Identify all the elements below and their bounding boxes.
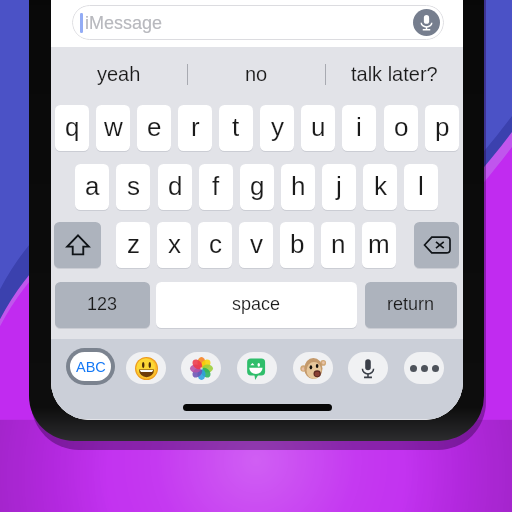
button[interactable]: x <box>157 222 191 268</box>
button[interactable]: c <box>198 222 232 268</box>
staticText: talk later? <box>351 63 438 85</box>
button[interactable]: talk later? <box>326 57 463 91</box>
button[interactable]: yeah <box>51 57 187 91</box>
staticText: c <box>209 229 222 258</box>
staticText: q <box>65 112 80 141</box>
button[interactable]: q <box>55 105 89 151</box>
staticText: ABC <box>76 359 106 375</box>
staticText: e <box>147 112 162 141</box>
staticText: a <box>85 171 100 200</box>
button[interactable]: i <box>342 105 376 151</box>
button[interactable]: o <box>384 105 418 151</box>
staticText: i <box>356 112 362 141</box>
button[interactable]: Backspace <box>414 222 459 268</box>
button[interactable]: t <box>219 105 253 151</box>
button[interactable]: space <box>156 282 357 328</box>
button[interactable]: iMessage <box>72 5 444 40</box>
staticText: x <box>168 229 181 258</box>
button[interactable]: Memoji <box>293 352 333 384</box>
button[interactable]: f <box>199 164 233 210</box>
button[interactable]: p <box>425 105 459 151</box>
button[interactable]: return <box>365 282 457 328</box>
button[interactable]: s <box>116 164 150 210</box>
staticText: y <box>271 112 284 141</box>
staticText: r <box>191 112 200 141</box>
button[interactable]: d <box>158 164 192 210</box>
button[interactable]: ABC <box>70 352 111 381</box>
staticText: o <box>394 112 409 141</box>
button[interactable]: a <box>75 164 109 210</box>
staticText: space <box>232 294 281 314</box>
button[interactable]: b <box>280 222 314 268</box>
staticText: w <box>104 112 123 141</box>
button[interactable]: v <box>239 222 273 268</box>
staticText: s <box>127 171 140 200</box>
staticText: l <box>418 171 424 200</box>
staticText: v <box>250 229 263 258</box>
staticText: j <box>336 171 342 200</box>
staticText: u <box>311 112 326 141</box>
staticText: z <box>127 229 140 258</box>
button[interactable]: z <box>116 222 150 268</box>
staticText: no <box>245 63 268 85</box>
button[interactable]: j <box>322 164 356 210</box>
staticText: n <box>331 229 346 258</box>
button[interactable]: Dictate <box>413 9 440 36</box>
staticText: 123 <box>87 294 118 314</box>
button[interactable]: l <box>404 164 438 210</box>
staticText: d <box>168 171 183 200</box>
button[interactable]: e <box>137 105 171 151</box>
staticText: b <box>290 229 305 258</box>
button[interactable]: n <box>321 222 355 268</box>
staticText: iMessage <box>85 13 163 33</box>
staticText: t <box>232 112 240 141</box>
button[interactable]: More <box>404 352 444 384</box>
button[interactable]: 123 <box>55 282 150 328</box>
staticText: p <box>435 112 450 141</box>
button[interactable]: h <box>281 164 315 210</box>
button[interactable]: w <box>96 105 130 151</box>
button[interactable]: no <box>188 57 325 91</box>
button[interactable]: Shift <box>54 222 101 268</box>
button[interactable]: Emoji <box>126 352 166 384</box>
button[interactable]: y <box>260 105 294 151</box>
button[interactable]: m <box>362 222 396 268</box>
staticText: f <box>212 171 220 200</box>
staticText: g <box>250 171 265 200</box>
staticText: k <box>374 171 387 200</box>
staticText: h <box>291 171 306 200</box>
staticText: m <box>368 229 390 258</box>
button[interactable]: Stickers <box>237 352 277 384</box>
staticText: return <box>387 294 435 314</box>
button[interactable]: Photos <box>181 352 221 384</box>
button[interactable]: u <box>301 105 335 151</box>
staticText: yeah <box>97 63 141 85</box>
button[interactable]: r <box>178 105 212 151</box>
button[interactable]: Dictation <box>348 352 388 384</box>
button[interactable]: k <box>363 164 397 210</box>
button[interactable]: g <box>240 164 274 210</box>
